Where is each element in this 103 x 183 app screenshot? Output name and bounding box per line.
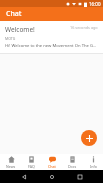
button[interactable]: Info bbox=[83, 154, 103, 170]
staticText: MOTG bbox=[5, 36, 16, 41]
staticText: FAQ bbox=[28, 164, 35, 169]
staticText: News bbox=[6, 164, 16, 169]
staticText: Chat bbox=[48, 164, 56, 169]
button[interactable]: Recents bbox=[75, 172, 84, 181]
staticText: 16 seconds ago bbox=[70, 25, 98, 30]
button[interactable]: Welcome! bbox=[0, 21, 103, 53]
button[interactable]: New chat bbox=[81, 130, 97, 146]
button[interactable]: Chat bbox=[42, 154, 62, 170]
button[interactable]: Back bbox=[19, 172, 28, 181]
staticText: Chat bbox=[6, 9, 22, 19]
button[interactable]: Docs bbox=[62, 154, 82, 170]
staticText: Info bbox=[90, 164, 97, 169]
button[interactable]: Home bbox=[47, 172, 56, 181]
staticText: Welcome! bbox=[5, 25, 70, 34]
staticText: 16:00 bbox=[89, 1, 101, 7]
button[interactable]: FAQ bbox=[21, 154, 41, 170]
staticText: Hi! Welcome to the new Movement On The G… bbox=[5, 43, 98, 49]
button[interactable]: News bbox=[1, 154, 21, 170]
staticText: Docs bbox=[68, 164, 77, 169]
